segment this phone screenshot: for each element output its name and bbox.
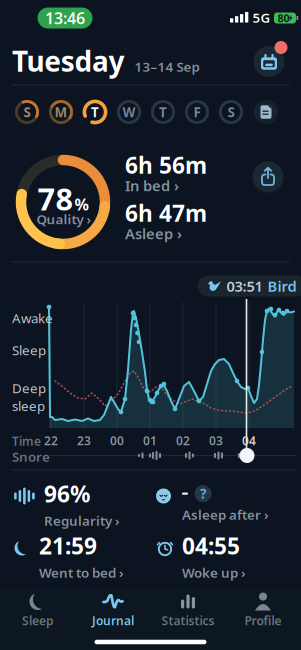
button[interactable]: Journal <box>78 588 148 632</box>
staticText: sleep <box>12 397 45 415</box>
button[interactable]: S <box>15 100 39 124</box>
staticText: Journal <box>92 612 134 628</box>
staticText: 13:46 <box>45 7 85 29</box>
button[interactable]: Sleep <box>3 588 73 632</box>
button[interactable]: 03:51 <box>197 275 301 296</box>
staticText: 6h 47m <box>125 198 207 228</box>
staticText: F <box>193 103 200 121</box>
button[interactable]: Statistics <box>153 588 223 632</box>
staticText: ? <box>200 485 206 502</box>
staticText: In bed › <box>125 176 179 195</box>
button[interactable]: 6h 56m <box>125 155 235 196</box>
staticText: Sleep <box>22 612 54 628</box>
staticText: 22 <box>44 432 58 448</box>
staticText: 00 <box>110 432 124 448</box>
staticText: 02 <box>176 432 190 448</box>
staticText: 01 <box>143 432 157 448</box>
staticText: 80 <box>277 11 289 25</box>
staticText: 04 <box>242 432 256 448</box>
staticText: 96% <box>44 479 90 509</box>
staticText: 03 <box>209 432 223 448</box>
staticText: Went to bed › <box>39 564 124 581</box>
staticText: Profile <box>244 612 281 628</box>
button[interactable]: M <box>49 100 73 124</box>
staticText: Snore <box>12 448 50 465</box>
button[interactable]: T <box>151 100 175 124</box>
staticText: W <box>122 103 135 121</box>
staticText: Bird <box>267 276 296 296</box>
button[interactable]: 96% <box>14 479 144 529</box>
button[interactable]: T <box>83 100 107 124</box>
staticText: 23 <box>77 432 91 448</box>
staticText: T <box>91 103 99 121</box>
button[interactable]: Profile <box>228 588 298 632</box>
button[interactable]: S <box>219 100 243 124</box>
staticText: Quality › <box>36 210 91 228</box>
staticText: Asleep after › <box>182 506 269 523</box>
button[interactable]: 6h 47m <box>125 203 235 244</box>
staticText: Tuesday <box>12 42 125 80</box>
staticText: 5G <box>252 9 270 26</box>
staticText: % <box>74 194 88 215</box>
staticText: S <box>23 103 30 121</box>
staticText: Time <box>12 433 41 449</box>
staticText: Sleep <box>12 341 46 359</box>
staticText: T <box>159 103 167 121</box>
staticText: 78 <box>37 178 73 219</box>
staticText: Awake <box>12 309 53 327</box>
button[interactable]: W <box>117 100 141 124</box>
button[interactable]: F <box>185 100 209 124</box>
button[interactable]: Calendar <box>247 39 291 83</box>
staticText: Statistics <box>161 612 214 628</box>
staticText: 04:55 <box>182 531 240 561</box>
staticText: Woke up › <box>182 564 246 581</box>
staticText: S <box>227 103 234 121</box>
button[interactable]: Sleep notes <box>253 99 279 125</box>
button[interactable]: 78 <box>15 154 111 250</box>
staticText: Deep <box>12 379 46 397</box>
staticText: 03:51 <box>226 276 262 296</box>
staticText: 13–14 Sep <box>135 58 200 75</box>
staticText: 6h 56m <box>125 150 207 180</box>
staticText: 21:59 <box>39 531 97 561</box>
button[interactable]: Share <box>251 160 285 194</box>
staticText: Asleep › <box>125 224 182 243</box>
staticText: Regularity › <box>44 512 120 529</box>
button[interactable]: ? <box>156 485 286 523</box>
button[interactable]: 04:55 <box>156 531 286 581</box>
button[interactable]: 21:59 <box>13 531 143 581</box>
staticText: M <box>54 103 67 121</box>
